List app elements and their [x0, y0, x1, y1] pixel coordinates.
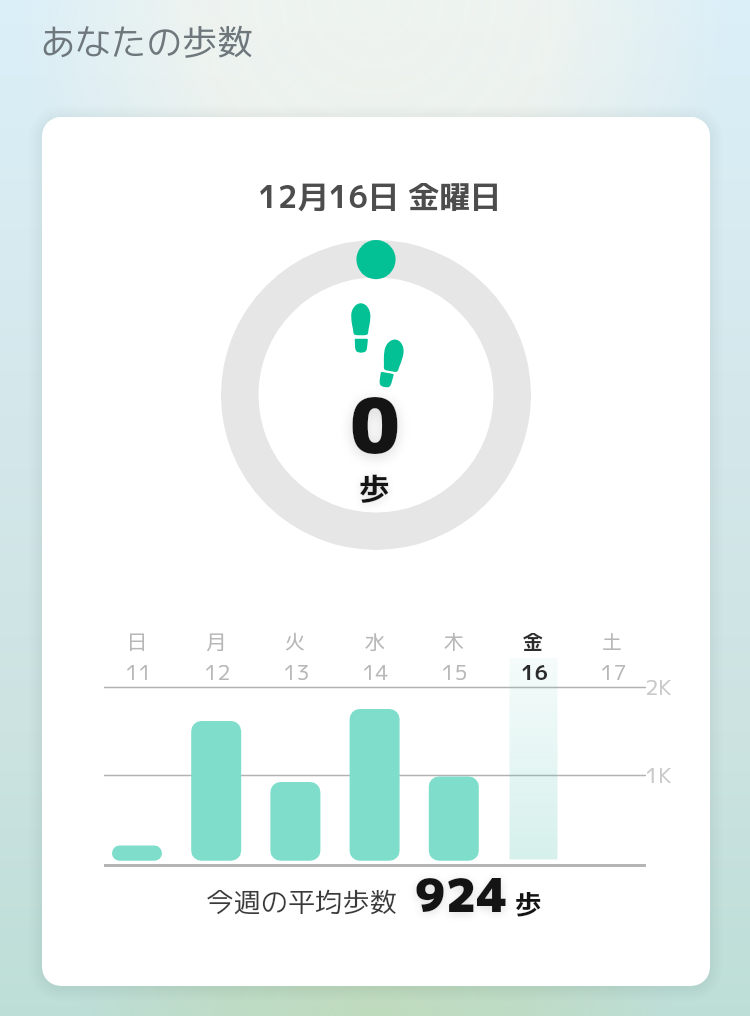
staticText: 11	[125, 657, 152, 686]
button[interactable]	[42, 117, 710, 986]
staticText: 12	[204, 657, 231, 686]
staticText: 木	[444, 627, 464, 655]
staticText: 今週の平均歩数	[206, 883, 397, 921]
staticText: 16	[521, 657, 548, 686]
staticText: 12月16日 金曜日	[258, 175, 501, 218]
staticText: 日	[127, 627, 147, 655]
staticText: 15	[441, 657, 468, 686]
staticText: 火	[285, 627, 305, 655]
staticText: 924	[414, 861, 508, 927]
staticText: あなたの歩数	[40, 17, 253, 66]
staticText: 土	[602, 627, 622, 655]
staticText: 歩	[359, 467, 390, 510]
staticText: 0	[350, 373, 400, 477]
staticText: 水	[365, 627, 385, 655]
staticText: 月	[206, 627, 226, 655]
staticText: 1K	[645, 760, 672, 790]
staticText: 17	[600, 657, 627, 686]
staticText: 金	[523, 627, 543, 655]
staticText: 歩	[515, 885, 542, 922]
staticText: 2K	[645, 672, 672, 702]
staticText: 13	[283, 657, 310, 686]
staticText: 14	[362, 657, 389, 686]
